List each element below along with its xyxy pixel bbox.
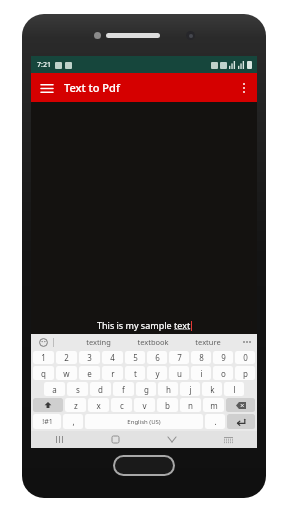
button[interactable]: s [67,382,88,396]
staticText: Text to Pdf [64,80,120,95]
button[interactable]: Hide keyboard [143,431,200,448]
button[interactable]: Open navigation drawer [36,77,58,99]
staticText: This is my sample [97,319,174,331]
button[interactable]: Switch keyboard [200,431,257,448]
button[interactable]: c [111,398,132,412]
other: Home [113,455,175,476]
staticText: 5 [133,352,138,363]
staticText: w [63,368,70,379]
button[interactable]: t [125,366,145,380]
button[interactable]: a [44,382,65,396]
staticText: r [111,368,115,379]
button[interactable]: k [202,382,222,396]
button[interactable]: Stickers [37,336,49,348]
staticText: u [177,368,182,379]
button[interactable]: h [158,382,178,396]
staticText: texture [195,337,221,347]
button[interactable]: More options [234,78,254,98]
staticText: , [72,416,75,427]
button[interactable]: n [180,398,201,412]
staticText: l [233,384,236,395]
button[interactable]: o [213,366,233,380]
staticText: q [41,368,46,379]
staticText: text [174,319,191,331]
button[interactable]: More suggestions [241,336,253,348]
button[interactable]: English (US) [85,414,203,429]
staticText: !#1 [42,417,53,427]
staticText: o [221,368,226,379]
staticText: 0 [243,352,248,363]
button[interactable]: 0 [235,351,255,364]
button[interactable]: texting [72,334,124,350]
button[interactable]: x [88,398,109,412]
staticText: s [76,384,80,395]
button[interactable]: m [203,398,224,412]
button[interactable]: Recent apps [31,431,87,448]
button[interactable]: b [157,398,178,412]
button[interactable]: y [147,366,167,380]
staticText: m [210,400,218,411]
button[interactable]: Backspace [226,398,255,412]
button[interactable]: Home [87,431,143,448]
button[interactable]: !#1 [33,414,61,429]
staticText: d [98,384,103,395]
staticText: v [142,400,147,411]
button[interactable]: p [235,366,255,380]
button[interactable]: r [102,366,123,380]
staticText: 8 [199,352,204,363]
staticText: e [87,368,92,379]
button[interactable]: j [180,382,200,396]
staticText: n [188,400,193,411]
staticText: t [134,368,137,379]
button[interactable]: g [136,382,156,396]
staticText: . [214,416,217,427]
button[interactable]: 1 [33,351,54,364]
button[interactable]: l [224,382,244,396]
staticText: i [200,368,203,379]
button[interactable]: texture [182,334,234,350]
staticText: 7 [177,352,182,363]
button[interactable]: u [169,366,189,380]
button[interactable]: w [56,366,77,380]
staticText: 1 [41,352,46,363]
staticText: c [120,400,124,411]
staticText: a [52,384,57,395]
staticText: k [210,384,215,395]
staticText: 2 [64,352,69,363]
button[interactable]: 6 [147,351,167,364]
button[interactable]: f [113,382,134,396]
button[interactable]: 3 [79,351,100,364]
button[interactable]: z [65,398,86,412]
staticText: h [166,384,171,395]
staticText: g [144,384,149,395]
button[interactable]: . [205,414,225,429]
button[interactable]: 5 [125,351,145,364]
button[interactable]: 9 [213,351,233,364]
staticText: b [165,400,170,411]
button[interactable]: q [33,366,54,380]
staticText: y [155,368,160,379]
staticText: texting [86,337,111,347]
staticText: 4 [110,352,115,363]
button[interactable]: Enter [227,414,255,429]
staticText: p [243,368,248,379]
staticText: j [189,384,192,395]
staticText: 7:21 [37,60,51,70]
button[interactable]: e [79,366,100,380]
button[interactable]: i [191,366,211,380]
button[interactable]: d [90,382,111,396]
button[interactable]: v [134,398,155,412]
staticText: z [74,400,78,411]
button[interactable]: Shift [33,398,63,412]
staticText: textbook [137,337,169,347]
staticText: English (US) [127,418,161,426]
staticText: f [122,384,125,395]
button[interactable]: 7 [169,351,189,364]
button[interactable]: , [63,414,83,429]
button[interactable]: textbook [124,334,182,350]
button[interactable]: 8 [191,351,211,364]
staticText: 9 [221,352,226,363]
staticText: 6 [155,352,160,363]
button[interactable]: 2 [56,351,77,364]
button[interactable]: 4 [102,351,123,364]
